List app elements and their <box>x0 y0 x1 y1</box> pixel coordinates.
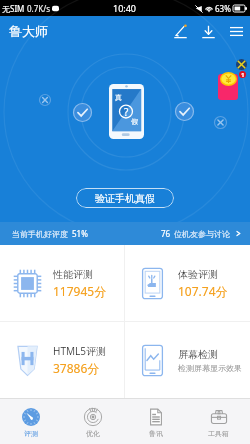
button[interactable]: HTML5评测 <box>0 322 124 398</box>
staticText: 假 <box>131 117 138 126</box>
button[interactable]: 评测 <box>0 398 62 444</box>
staticText: 当前手机好评度 <box>12 229 68 239</box>
button[interactable]: 屏幕检测 <box>125 322 250 398</box>
staticText: 评测 <box>24 429 38 438</box>
button[interactable]: 体验评测 <box>125 245 250 321</box>
staticText: 位机友参与讨论 <box>174 229 230 239</box>
staticText: 工具箱 <box>208 429 229 438</box>
button[interactable]: 76 <box>125 222 250 245</box>
button[interactable]: 优化 <box>62 398 124 444</box>
staticText: 63% <box>215 3 231 14</box>
button[interactable]: Download <box>196 19 220 43</box>
staticText: 10:40 <box>113 2 137 14</box>
staticText: 107.74分 <box>178 283 228 299</box>
staticText: 37886分 <box>53 360 100 376</box>
staticText: 0.7K/s <box>27 3 51 14</box>
button[interactable]: 验证手机真假 <box>76 188 174 208</box>
button[interactable]: 工具箱 <box>187 398 250 444</box>
button[interactable]: Feedback <box>168 19 192 43</box>
staticText: 验证手机真假 <box>95 192 155 205</box>
button[interactable]: Close <box>236 59 247 70</box>
staticText: 优化 <box>86 429 100 438</box>
staticText: 检测屏幕显示效果 <box>178 363 242 373</box>
staticText: 体验评测 <box>178 268 218 281</box>
staticText: 真 <box>115 93 122 102</box>
button[interactable]: 鲁讯 <box>124 398 187 444</box>
staticText: 无SIM <box>2 3 25 14</box>
staticText: 鲁讯 <box>149 429 163 438</box>
staticText: 76 <box>161 228 171 239</box>
button[interactable]: Reward <box>218 74 238 100</box>
staticText: 51% <box>72 228 88 239</box>
staticText: 117945分 <box>53 283 107 299</box>
staticText: ? <box>124 105 129 119</box>
staticText: 鲁大师 <box>9 23 48 39</box>
button[interactable]: 性能评测 <box>0 245 124 321</box>
staticText: 屏幕检测 <box>178 348 218 361</box>
staticText: 1 <box>241 71 245 78</box>
button[interactable]: Menu <box>224 19 248 43</box>
staticText: 性能评测 <box>53 268 93 281</box>
button[interactable]: 当前手机好评度 <box>0 222 125 245</box>
staticText: HTML5评测 <box>53 344 106 358</box>
